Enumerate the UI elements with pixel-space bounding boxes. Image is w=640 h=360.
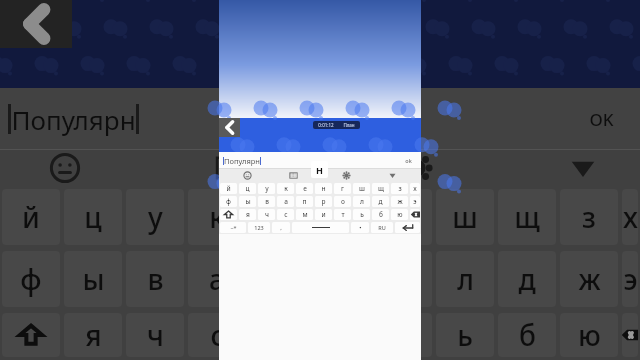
button[interactable]: Back <box>0 0 72 48</box>
button[interactable]: о <box>374 251 432 307</box>
button[interactable]: д <box>372 196 389 207</box>
button[interactable]: Enter <box>395 222 420 233</box>
button[interactable]: Hide keyboard <box>566 151 600 185</box>
button[interactable]: п <box>296 196 313 207</box>
button[interactable]: а <box>188 251 246 307</box>
button[interactable]: ь <box>353 209 370 220</box>
button[interactable]: ~* <box>220 222 246 233</box>
button[interactable]: е <box>296 183 313 194</box>
button[interactable]: ж <box>560 251 618 307</box>
button[interactable]: х <box>622 189 638 245</box>
button[interactable]: л <box>353 196 370 207</box>
button[interactable]: э <box>410 196 420 207</box>
button[interactable]: с <box>277 209 294 220</box>
button[interactable]: з <box>560 189 618 245</box>
button[interactable]: т <box>374 313 432 357</box>
button[interactable]: с <box>188 313 246 357</box>
button[interactable]: я <box>64 313 122 357</box>
button[interactable]: ok <box>400 157 417 164</box>
button[interactable]: Space <box>292 222 349 233</box>
staticText: я <box>85 316 102 354</box>
staticText: й <box>226 184 231 193</box>
button[interactable]: ы <box>239 196 256 207</box>
staticText: д <box>518 260 536 298</box>
button[interactable]: е <box>250 189 308 245</box>
button[interactable]: ш <box>353 183 370 194</box>
button[interactable]: • <box>351 222 369 233</box>
staticText: ч <box>265 210 269 219</box>
button[interactable]: ф <box>2 251 60 307</box>
button[interactable]: ц <box>239 183 256 194</box>
button[interactable]: в <box>126 251 184 307</box>
button[interactable]: щ <box>372 183 389 194</box>
button[interactable]: р <box>315 196 332 207</box>
button[interactable]: ч <box>126 313 184 357</box>
button[interactable]: и <box>315 209 332 220</box>
button[interactable]: й <box>220 183 237 194</box>
button[interactable]: 0:01:12 <box>313 121 360 129</box>
button[interactable]: Settings <box>342 171 351 180</box>
button[interactable]: ь <box>436 313 494 357</box>
button[interactable]: я <box>239 209 256 220</box>
button[interactable]: Н <box>311 161 328 178</box>
button[interactable]: Hide keyboard <box>388 171 397 180</box>
button[interactable]: у <box>258 183 275 194</box>
button[interactable]: а <box>277 196 294 207</box>
button[interactable]: ж <box>391 196 408 207</box>
button[interactable]: й <box>2 189 60 245</box>
staticText: г <box>341 184 344 193</box>
button[interactable]: Shift <box>2 313 60 357</box>
staticText: щ <box>378 184 384 193</box>
button[interactable]: ы <box>64 251 122 307</box>
button[interactable]: к <box>188 189 246 245</box>
button[interactable]: Shift <box>220 209 237 220</box>
staticText: , <box>280 224 282 232</box>
button[interactable]: ф <box>220 196 237 207</box>
button[interactable]: в <box>258 196 275 207</box>
button[interactable]: , <box>272 222 290 233</box>
button[interactable]: ш <box>436 189 494 245</box>
button[interactable]: ю <box>560 313 618 357</box>
button[interactable]: ч <box>258 209 275 220</box>
button[interactable]: Settings <box>400 151 434 185</box>
button[interactable]: м <box>296 209 313 220</box>
staticText: т <box>341 210 345 219</box>
button[interactable]: т <box>334 209 351 220</box>
staticText: п <box>302 197 307 206</box>
button[interactable]: н <box>315 183 332 194</box>
button[interactable]: Emoji <box>243 171 252 180</box>
button[interactable]: з <box>391 183 408 194</box>
staticText: н <box>321 184 326 193</box>
staticText: ы <box>245 197 251 206</box>
button[interactable]: б <box>498 313 556 357</box>
button[interactable]: ю <box>391 209 408 220</box>
button[interactable]: о <box>334 196 351 207</box>
button[interactable]: Keyboard layout <box>289 171 298 180</box>
button[interactable]: д <box>498 251 556 307</box>
button[interactable]: б <box>372 209 389 220</box>
button[interactable]: щ <box>498 189 556 245</box>
button[interactable]: Back <box>219 118 240 137</box>
button[interactable]: Backspace <box>410 209 420 220</box>
button[interactable]: 123 <box>248 222 270 233</box>
button[interactable]: н <box>312 189 370 245</box>
button[interactable]: Backspace <box>622 313 638 357</box>
button[interactable]: г <box>334 183 351 194</box>
button[interactable]: к <box>277 183 294 194</box>
button[interactable]: ц <box>64 189 122 245</box>
button[interactable]: Emoji <box>48 151 82 185</box>
button[interactable]: э <box>622 251 638 307</box>
staticText: Н <box>316 164 323 176</box>
button[interactable]: л <box>436 251 494 307</box>
button[interactable]: г <box>374 189 432 245</box>
button[interactable]: OK <box>571 108 632 131</box>
button[interactable]: RU <box>371 222 393 233</box>
button[interactable]: х <box>410 183 420 194</box>
button[interactable]: у <box>126 189 184 245</box>
button[interactable]: Keyboard layout <box>214 151 248 185</box>
